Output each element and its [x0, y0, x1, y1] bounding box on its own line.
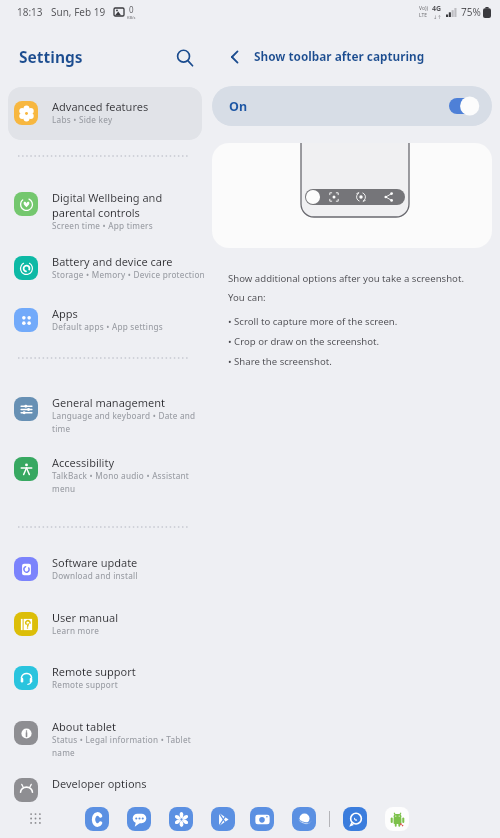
staticText: Download and install [52, 570, 138, 581]
staticText: Vo)) [419, 5, 428, 12]
button[interactable]: On [212, 86, 492, 126]
button[interactable] [8, 443, 201, 495]
staticText: Remote support [52, 664, 136, 679]
staticText: 4G [432, 4, 442, 14]
staticText: 18:13 [17, 5, 43, 19]
staticText: Settings [19, 46, 83, 67]
button[interactable]: Back [219, 41, 251, 73]
staticText: User manual [52, 610, 118, 625]
button[interactable] [8, 294, 201, 346]
button[interactable]: All apps [24, 807, 46, 829]
staticText: About tablet [52, 719, 116, 734]
staticText: Apps [52, 306, 78, 321]
staticText: • Share the screenshot. [228, 355, 332, 368]
button[interactable]: Messages [127, 807, 151, 831]
button[interactable] [8, 242, 201, 294]
button[interactable] [8, 707, 201, 759]
staticText: Show additional options after you take a… [228, 272, 476, 304]
staticText: Storage • Memory • Device protection [52, 269, 205, 280]
button[interactable]: Gallery [169, 807, 193, 831]
staticText: 0 [129, 4, 134, 15]
staticText: Developer options [52, 776, 147, 791]
button[interactable] [8, 764, 201, 816]
staticText: TalkBack • Mono audio • Assistant menu [52, 470, 208, 495]
staticText: Digital Wellbeing and parental controls [52, 190, 208, 220]
button[interactable] [8, 598, 201, 650]
staticText: Learn more [52, 625, 100, 636]
button[interactable]: Internet [292, 807, 316, 831]
staticText: KB/s [127, 15, 136, 20]
staticText: Remote support [52, 679, 118, 690]
staticText: Labs • Side key [52, 114, 113, 125]
staticText: LTE [419, 12, 428, 19]
staticText: Show toolbar after capturing [254, 48, 425, 64]
staticText: Battery and device care [52, 254, 173, 269]
staticText: Accessibility [52, 455, 115, 470]
button[interactable]: WhatsApp [343, 807, 367, 831]
button[interactable] [8, 87, 201, 139]
button[interactable]: Search [167, 40, 203, 76]
staticText: ↓↑ [433, 14, 442, 20]
staticText: General management [52, 395, 166, 410]
button[interactable]: Android [385, 807, 409, 831]
button[interactable] [8, 543, 201, 595]
button[interactable]: Play Store [211, 807, 235, 831]
button[interactable] [8, 383, 201, 435]
button[interactable] [8, 178, 201, 230]
button[interactable] [8, 652, 201, 704]
staticText: Default apps • App settings [52, 321, 163, 332]
staticText: Software update [52, 555, 138, 570]
staticText: 75% [461, 5, 481, 19]
staticText: • Scroll to capture more of the screen. [228, 315, 398, 328]
staticText: Advanced features [52, 99, 149, 114]
staticText: • Crop or draw on the screenshot. [228, 335, 380, 348]
staticText: Screen time • App timers [52, 220, 153, 231]
button[interactable]: Contacts [85, 807, 109, 831]
staticText: Status • Legal information • Tablet name [52, 734, 208, 759]
staticText: Language and keyboard • Date and time [52, 410, 208, 435]
button[interactable] [8, 87, 202, 140]
staticText: On [229, 98, 248, 115]
staticText: Sun, Feb 19 [51, 5, 106, 19]
button[interactable]: Camera [250, 807, 274, 831]
